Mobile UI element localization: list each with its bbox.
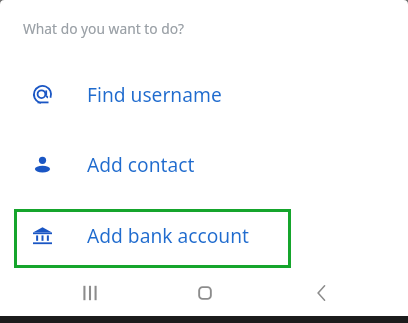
button[interactable]: Add contact: [0, 147, 408, 181]
staticText: Add contact: [87, 151, 195, 177]
button[interactable]: Recent apps: [67, 272, 113, 314]
button[interactable]: Add bank account: [0, 218, 408, 252]
button[interactable]: Find username: [0, 77, 408, 111]
button[interactable]: Back: [298, 272, 344, 314]
staticText: What do you want to do?: [23, 19, 184, 38]
button[interactable]: Home: [182, 272, 228, 314]
staticText: Find username: [87, 81, 222, 107]
staticText: Add bank account: [87, 222, 249, 248]
